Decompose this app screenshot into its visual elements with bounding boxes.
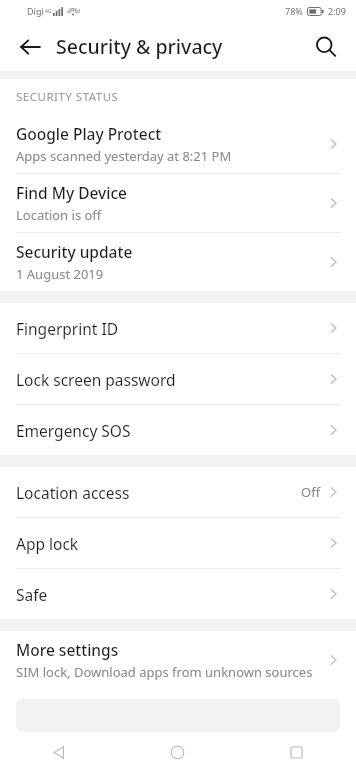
button[interactable]: App lock — [0, 518, 356, 568]
staticText: Security & privacy — [56, 33, 223, 60]
staticText: Digi — [27, 5, 44, 17]
button[interactable]: More settings — [0, 631, 356, 689]
staticText: Location is off — [16, 206, 102, 224]
button[interactable]: Lock screen password — [0, 354, 356, 404]
button[interactable]: Security update — [0, 233, 356, 291]
staticText: App lock — [16, 533, 318, 554]
staticText: Off — [301, 483, 321, 501]
staticText: Google Play Protect — [16, 123, 162, 144]
staticText: 1 — [78, 8, 81, 15]
button[interactable]: Back — [8, 25, 52, 69]
staticText: More settings — [16, 639, 119, 660]
staticText: 4G — [45, 8, 52, 15]
staticText: Fingerprint ID — [16, 318, 318, 339]
button[interactable]: Fingerprint ID — [0, 303, 356, 353]
button[interactable]: Safe — [0, 569, 356, 619]
button[interactable]: Back — [0, 732, 118, 772]
staticText: Emergency SOS — [16, 420, 318, 441]
button[interactable]: Emergency SOS — [0, 405, 356, 455]
button[interactable]: Find My Device — [0, 174, 356, 232]
button[interactable]: Search — [304, 25, 348, 69]
staticText: 1 August 2019 — [16, 265, 104, 283]
button[interactable]: Location access — [0, 467, 356, 517]
staticText: SECURITY STATUS — [16, 89, 119, 105]
staticText: Find My Device — [16, 182, 127, 203]
button[interactable]: Home — [118, 732, 237, 772]
button[interactable]: Recent apps — [237, 732, 356, 772]
staticText: SIM lock, Download apps from unknown sou… — [16, 663, 313, 681]
staticText: Safe — [16, 584, 318, 605]
staticText: 2:09 — [328, 5, 346, 17]
staticText: Lock screen password — [16, 369, 318, 390]
staticText: Location access — [16, 482, 301, 503]
staticText: 78% — [285, 5, 303, 17]
staticText: Security update — [16, 241, 133, 262]
staticText: Apps scanned yesterday at 8:21 PM — [16, 147, 232, 165]
button[interactable]: Google Play Protect — [0, 115, 356, 173]
